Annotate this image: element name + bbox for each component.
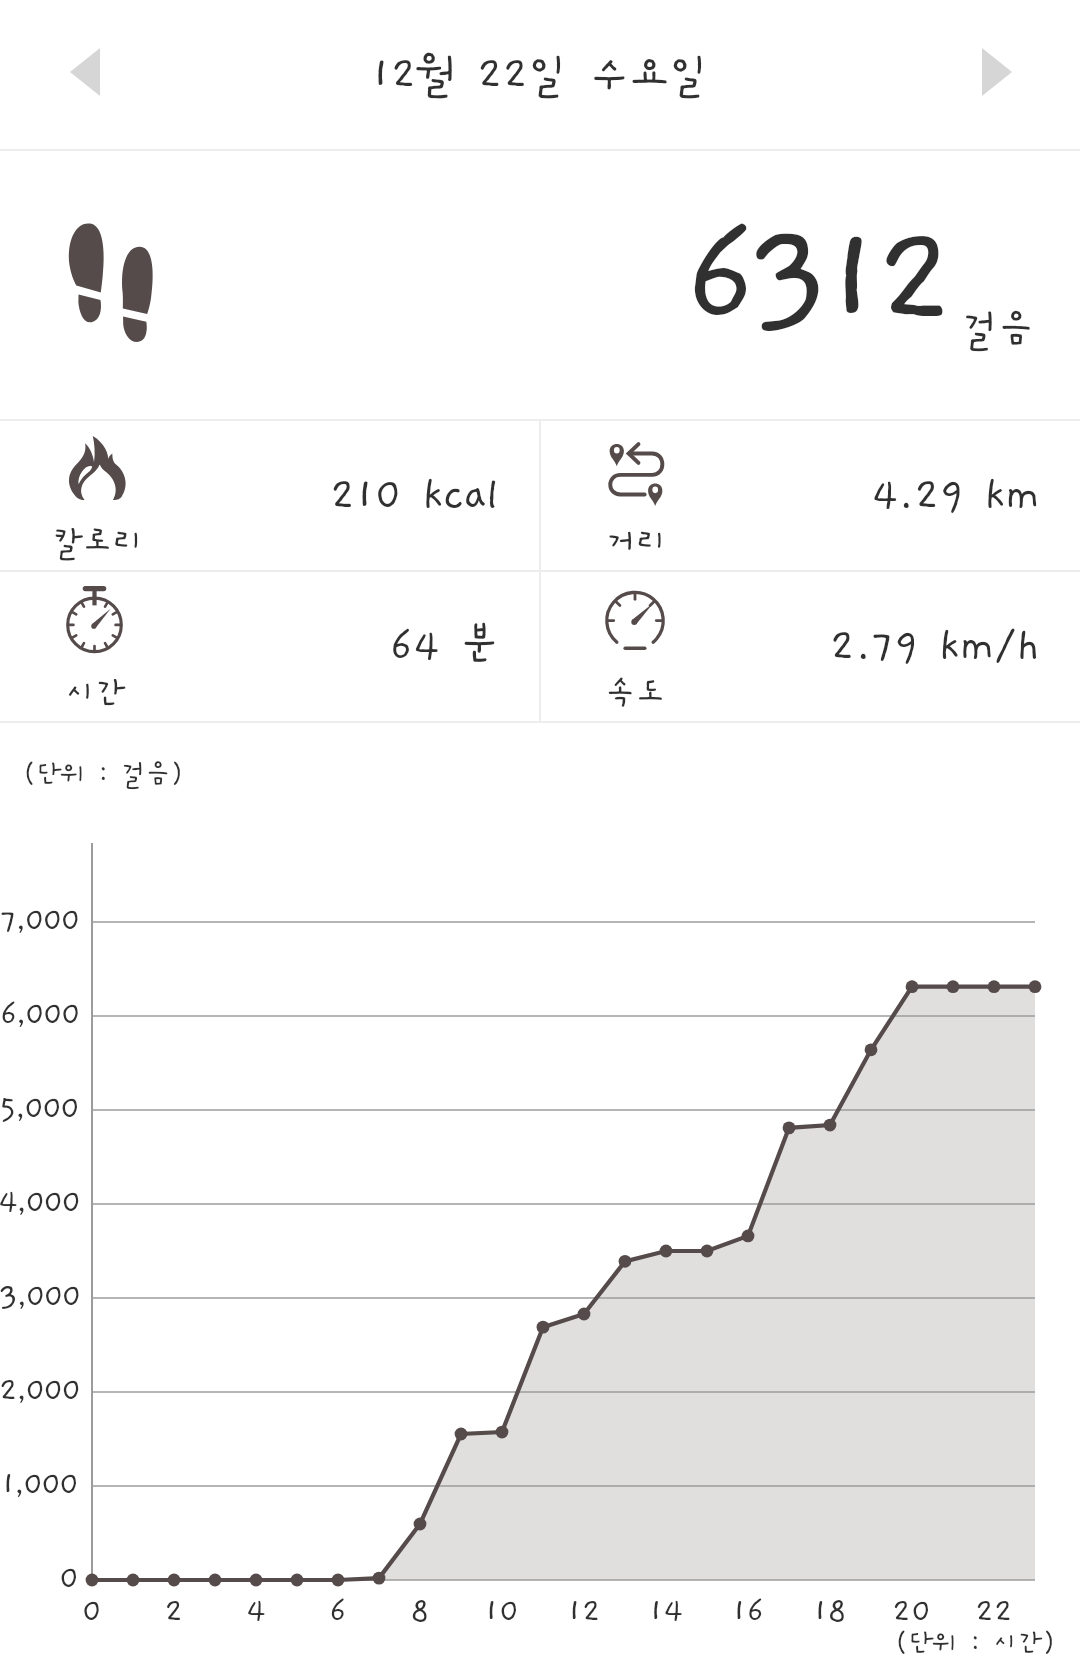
button[interactable]: Previous day — [26, 13, 144, 131]
staticText: 0 — [57, 1594, 127, 1630]
staticText: 14 — [631, 1594, 701, 1630]
button[interactable]: 속도 — [541, 572, 1080, 721]
staticText: 거리 — [606, 524, 667, 561]
staticText: (단위 : 걸음) — [23, 759, 184, 789]
staticText: 3,000 — [0, 1279, 80, 1315]
staticText: 4,000 — [0, 1185, 80, 1221]
staticText: (단위 : 시간) — [895, 1628, 1056, 1658]
staticText: 18 — [795, 1594, 865, 1630]
staticText: 12 — [549, 1594, 619, 1630]
staticText: 16 — [713, 1594, 783, 1630]
staticText: 6312 — [684, 201, 948, 356]
staticText: 4 — [221, 1594, 291, 1630]
staticText: 64 분 — [203, 623, 499, 671]
staticText: 210 kcal — [203, 472, 499, 520]
staticText: 20 — [877, 1594, 947, 1630]
staticText: 8 — [385, 1594, 455, 1630]
button[interactable]: Next day — [938, 13, 1056, 131]
staticText: 칼로리 — [52, 524, 144, 561]
staticText: 4.29 km — [744, 472, 1040, 520]
button[interactable]: 시간 — [0, 572, 539, 721]
staticText: 10 — [467, 1594, 537, 1630]
staticText: 속도 — [605, 675, 666, 712]
staticText: 2,000 — [0, 1373, 80, 1409]
staticText: 시간 — [65, 675, 126, 712]
staticText: 6 — [303, 1594, 373, 1630]
staticText: 0 — [59, 1561, 78, 1597]
button[interactable]: 거리 — [541, 421, 1080, 570]
button[interactable]: 칼로리 — [0, 421, 539, 570]
staticText: 12월 22일 수요일 — [371, 50, 710, 99]
staticText: 7,000 — [0, 903, 79, 939]
staticText: 6,000 — [0, 997, 79, 1033]
staticText: 22 — [959, 1594, 1029, 1630]
staticText: 1,000 — [1, 1467, 78, 1503]
staticText: 2.79 km/h — [744, 623, 1040, 671]
button[interactable]: 6312 — [0, 151, 1080, 419]
staticText: 2 — [139, 1594, 209, 1630]
staticText: 걸음 — [962, 308, 1035, 352]
staticText: 5,000 — [0, 1091, 79, 1127]
